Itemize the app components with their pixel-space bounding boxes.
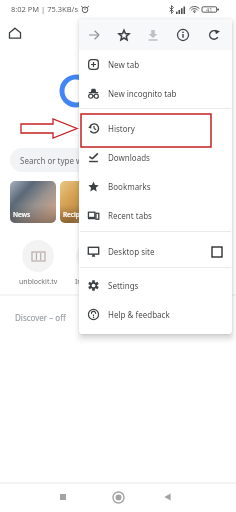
staticText: New tab bbox=[108, 59, 140, 70]
staticText: Instagram bbox=[75, 277, 110, 287]
button[interactable]: Sports bbox=[110, 181, 156, 223]
button[interactable]: Search or type web address bbox=[10, 148, 160, 172]
button[interactable]: Refresh bbox=[199, 19, 228, 50]
button[interactable]: Help & feedback bbox=[79, 300, 232, 329]
staticText: 41 bbox=[206, 6, 213, 13]
staticText: Search or type web address bbox=[20, 155, 124, 166]
button[interactable]: Recents bbox=[53, 487, 73, 507]
button[interactable]: New tab bbox=[79, 50, 232, 79]
button[interactable]: History bbox=[79, 114, 232, 143]
button[interactable]: Recipes bbox=[60, 181, 106, 223]
staticText: Recent tabs bbox=[108, 210, 152, 221]
staticText: Discover – off bbox=[15, 312, 66, 323]
staticText: Desktop site bbox=[108, 246, 155, 257]
staticText: Sports bbox=[113, 210, 133, 219]
staticText: 8:02 PM | 75.3KB/s bbox=[11, 4, 78, 14]
staticText: Downloads bbox=[108, 152, 150, 163]
staticText: Settings bbox=[108, 280, 139, 291]
button[interactable]: Settings bbox=[79, 271, 232, 300]
button[interactable]: Back bbox=[157, 487, 177, 507]
button[interactable]: Downloads bbox=[79, 143, 232, 172]
button[interactable]: Home bbox=[6, 24, 24, 42]
button[interactable]: Bookmark bbox=[109, 19, 138, 50]
button[interactable]: Forward bbox=[79, 19, 108, 50]
staticText: Help & feedback bbox=[108, 309, 170, 320]
button[interactable]: Instagram bbox=[66, 240, 118, 287]
button[interactable]: News bbox=[10, 181, 56, 223]
button[interactable]: Download page bbox=[138, 19, 167, 50]
staticText: New incognito tab bbox=[108, 88, 177, 99]
button[interactable]: New incognito tab bbox=[79, 79, 232, 108]
staticText: unblockit.tv bbox=[19, 277, 58, 287]
staticText: Recipes bbox=[63, 210, 87, 219]
button[interactable]: Home bbox=[108, 487, 128, 507]
button[interactable]: unblockit.tv bbox=[12, 240, 64, 287]
button[interactable]: Bookmarks bbox=[79, 172, 232, 201]
button[interactable]: Recent tabs bbox=[79, 201, 232, 230]
button[interactable]: Desktop site bbox=[79, 237, 232, 266]
staticText: Bookmarks bbox=[108, 181, 151, 192]
button[interactable]: Page info bbox=[168, 19, 197, 50]
staticText: History bbox=[108, 123, 135, 134]
staticText: News bbox=[13, 210, 31, 219]
